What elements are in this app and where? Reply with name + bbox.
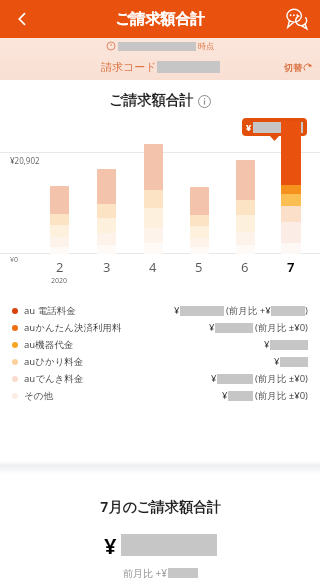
staticText: 請求コード xyxy=(101,60,157,74)
button[interactable] xyxy=(281,121,301,254)
button[interactable]: au 電話料金 xyxy=(12,302,308,319)
staticText: 時点 xyxy=(198,41,214,51)
staticText: (前月比 ±¥0) xyxy=(255,389,308,402)
button[interactable]: Chat support xyxy=(274,0,320,38)
staticText: ¥20,902 xyxy=(10,155,40,166)
staticText: 7月のご請求額合計 xyxy=(100,497,221,516)
staticText: その他 xyxy=(24,390,53,402)
staticText: ¥ xyxy=(222,389,228,402)
staticText: 2020 xyxy=(51,276,68,286)
staticText: 2 xyxy=(56,258,64,276)
staticText: 6 xyxy=(241,258,249,276)
staticText: 4 xyxy=(149,258,157,276)
button[interactable]: その他 xyxy=(12,387,308,404)
staticText: auひかり料金 xyxy=(24,355,84,368)
staticText: ¥ xyxy=(211,372,217,385)
staticText: au 電話料金 xyxy=(24,304,76,317)
button[interactable] xyxy=(236,160,255,254)
staticText: 3 xyxy=(103,258,111,276)
button[interactable] xyxy=(190,187,209,254)
staticText: ご請求額合計 xyxy=(115,10,206,29)
button[interactable]: au機器代金 xyxy=(12,336,308,353)
staticText: 5 xyxy=(195,258,203,276)
button[interactable] xyxy=(50,186,69,254)
staticText: ¥ xyxy=(174,304,180,317)
staticText: ) xyxy=(305,304,308,317)
button[interactable]: auひかり料金 xyxy=(12,353,308,370)
button[interactable] xyxy=(144,144,163,254)
staticText: (前月比 ±¥0) xyxy=(255,372,308,385)
staticText: (前月比 ±¥0) xyxy=(255,321,308,334)
button[interactable]: auかんたん決済利用料 xyxy=(12,319,308,336)
staticText: 前月比 +¥ xyxy=(123,566,168,580)
staticText: ご請求額合計 xyxy=(109,92,194,110)
staticText: 7 xyxy=(287,258,295,276)
staticText: au機器代金 xyxy=(24,338,74,351)
staticText: ¥ xyxy=(246,121,252,133)
button[interactable]: 切替 xyxy=(284,62,312,73)
button[interactable]: Back xyxy=(0,0,44,38)
staticText: (前月比 +¥ xyxy=(226,304,271,317)
button[interactable]: ¥ xyxy=(246,121,303,133)
staticText: ¥0 xyxy=(10,255,19,265)
staticText: auかんたん決済利用料 xyxy=(24,321,122,334)
staticText: ¥ xyxy=(264,338,270,351)
button[interactable]: auでんき料金 xyxy=(12,370,308,387)
staticText: auでんき料金 xyxy=(24,372,84,385)
staticText: 切替 xyxy=(284,62,302,73)
button[interactable] xyxy=(97,169,116,254)
staticText: ¥ xyxy=(274,355,280,368)
staticText: ¥ xyxy=(104,530,117,560)
staticText: ¥ xyxy=(209,321,215,334)
button[interactable]: Info xyxy=(198,95,211,108)
